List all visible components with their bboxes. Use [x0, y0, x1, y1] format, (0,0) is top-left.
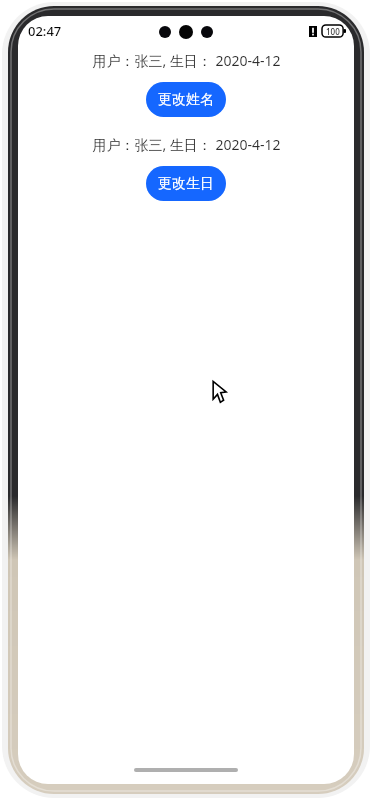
staticText: 100: [326, 26, 340, 37]
staticText: 更改生日: [158, 175, 214, 193]
button[interactable]: 更改姓名: [146, 82, 226, 117]
staticText: 用户：张三, 生日： 2020-4-12: [92, 135, 281, 154]
staticText: 02:47: [28, 22, 62, 40]
other: Battery 100 percent: [322, 25, 346, 37]
other: Alert: [309, 26, 317, 37]
staticText: 用户：张三, 生日： 2020-4-12: [92, 51, 281, 70]
button[interactable]: 更改生日: [146, 166, 226, 201]
staticText: 更改姓名: [158, 91, 214, 109]
